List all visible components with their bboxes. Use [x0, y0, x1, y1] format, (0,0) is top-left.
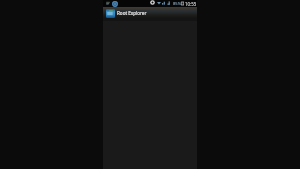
- staticText: Root Explorer: [117, 10, 147, 16]
- button[interactable]: Root Explorer app icon: [103, 7, 197, 21]
- button[interactable]: Root Explorer app icon: [106, 9, 115, 18]
- button[interactable]: Status bar: [103, 0, 197, 7]
- staticText: 10:55: [185, 1, 197, 7]
- staticText: 85%: [173, 1, 182, 7]
